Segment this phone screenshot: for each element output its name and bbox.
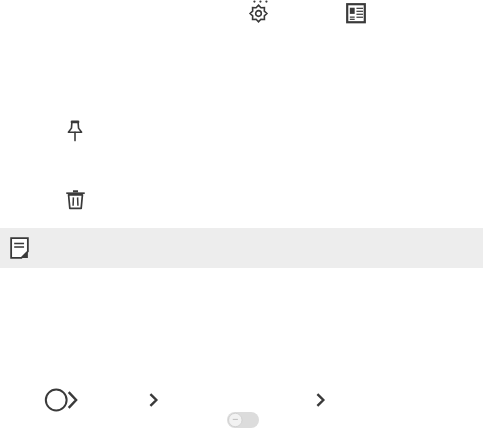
button[interactable]: Record (44, 387, 86, 413)
button[interactable]: Next (144, 389, 164, 411)
button[interactable]: Pin (64, 119, 86, 143)
other: Note (10, 237, 29, 259)
button[interactable]: Delete (65, 189, 86, 210)
button[interactable]: More options (249, 0, 271, 24)
button[interactable]: Notes list (345, 2, 367, 24)
button[interactable]: Toggle off (227, 412, 259, 428)
button[interactable]: Settings (248, 3, 269, 24)
button[interactable]: Next (311, 389, 331, 411)
button[interactable]: Note (0, 228, 483, 268)
